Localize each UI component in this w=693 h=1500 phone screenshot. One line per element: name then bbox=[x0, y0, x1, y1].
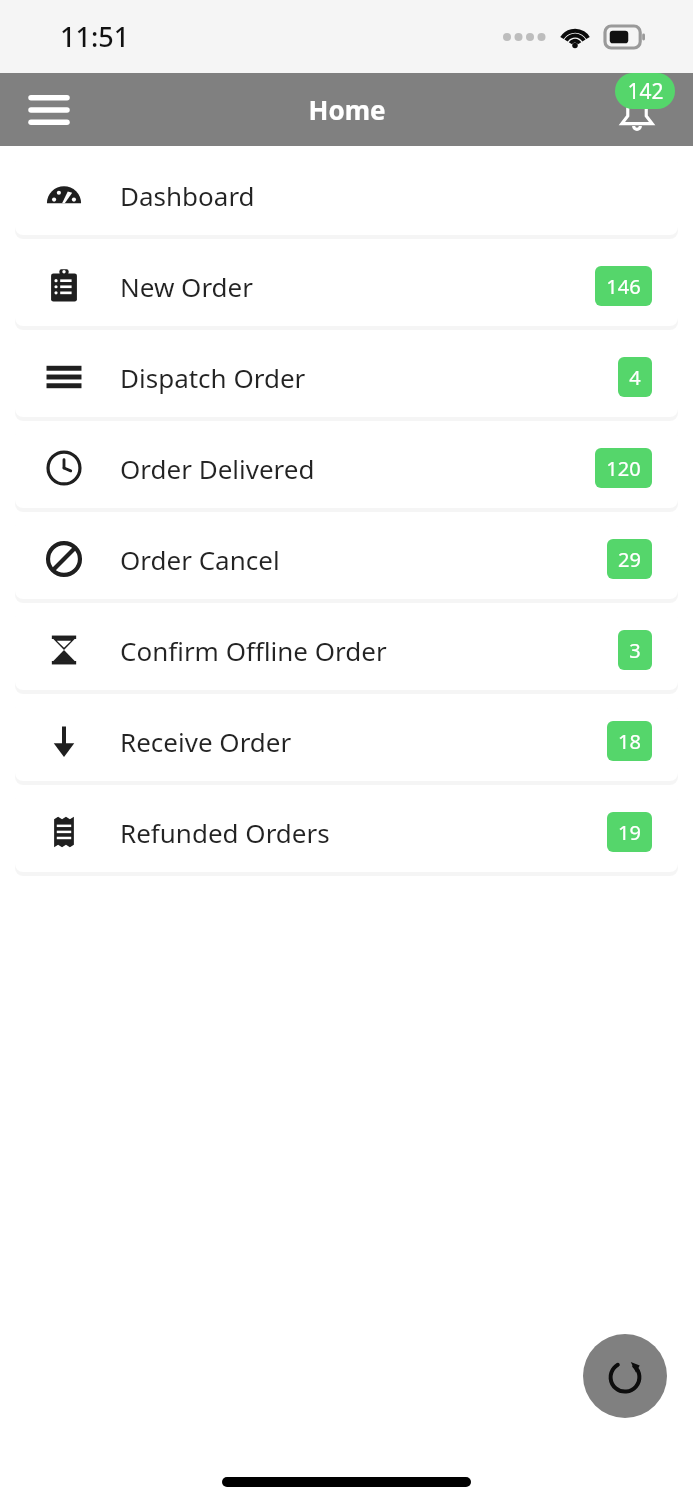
staticText: 142 bbox=[627, 77, 664, 106]
button[interactable]: Order Delivered bbox=[15, 428, 678, 508]
staticText: Order Delivered bbox=[120, 451, 315, 486]
staticText: 146 bbox=[606, 273, 641, 300]
staticText: Home bbox=[308, 92, 386, 127]
staticText: Order Cancel bbox=[120, 542, 280, 577]
staticText: Dashboard bbox=[120, 178, 255, 213]
button[interactable]: Receive Order bbox=[15, 701, 678, 781]
button[interactable]: Menu bbox=[20, 81, 78, 139]
button[interactable]: Dashboard bbox=[15, 155, 678, 235]
button[interactable]: Dispatch Order bbox=[15, 337, 678, 417]
button[interactable]: Notifications bbox=[601, 75, 671, 145]
button[interactable]: Order Cancel bbox=[15, 519, 678, 599]
staticText: 19 bbox=[618, 819, 641, 846]
button[interactable]: Confirm Offline Order bbox=[15, 610, 678, 690]
staticText: 29 bbox=[618, 546, 641, 573]
staticText: 4 bbox=[629, 364, 641, 391]
staticText: Receive Order bbox=[120, 724, 292, 759]
staticText: Refunded Orders bbox=[120, 815, 330, 850]
staticText: 3 bbox=[629, 637, 641, 664]
button[interactable]: New Order bbox=[15, 246, 678, 326]
staticText: Confirm Offline Order bbox=[120, 633, 387, 668]
button[interactable]: Refunded Orders bbox=[15, 792, 678, 872]
staticText: 18 bbox=[618, 728, 641, 755]
staticText: Dispatch Order bbox=[120, 360, 306, 395]
staticText: New Order bbox=[120, 269, 254, 304]
button[interactable]: Refresh bbox=[583, 1334, 667, 1418]
staticText: 120 bbox=[606, 455, 641, 482]
staticText: 11:51 bbox=[60, 18, 130, 55]
